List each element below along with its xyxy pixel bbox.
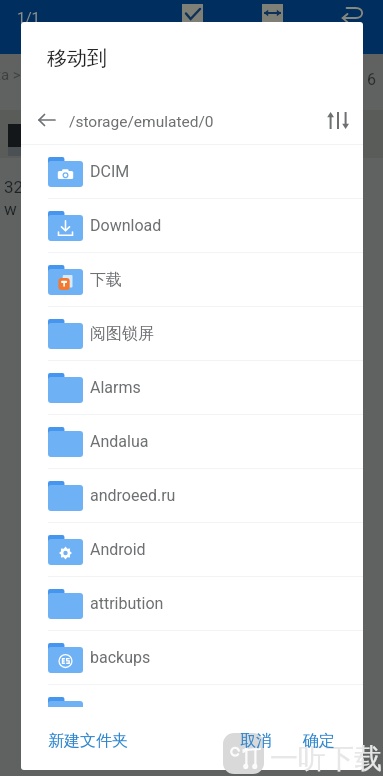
staticText: 新建文件夹 bbox=[48, 731, 128, 751]
staticText: 32 bbox=[4, 177, 24, 197]
staticText: 阅图锁屏 bbox=[90, 324, 154, 344]
button[interactable]: 取消 bbox=[234, 723, 278, 759]
button[interactable]: 下载 bbox=[21, 253, 363, 306]
staticText: attribution bbox=[90, 594, 164, 613]
button[interactable]: 新建文件夹 bbox=[42, 723, 134, 759]
staticText: 一听下载 bbox=[270, 741, 382, 776]
staticText: /storage/emulated/0 bbox=[69, 113, 318, 131]
button[interactable]: androeed.ru bbox=[21, 469, 363, 522]
button[interactable]: Resize bbox=[262, 4, 283, 30]
button[interactable]: backups bbox=[21, 631, 363, 684]
staticText: ta > bbox=[0, 66, 21, 84]
staticText: Android bbox=[90, 540, 146, 559]
button[interactable]: Andalua bbox=[21, 415, 363, 468]
staticText: 1/1 bbox=[17, 9, 41, 27]
button[interactable]: Android bbox=[21, 523, 363, 576]
button[interactable]: Back bbox=[26, 99, 67, 140]
staticText: Andalua bbox=[90, 432, 149, 451]
staticText: 确定 bbox=[303, 731, 335, 751]
staticText: 移动到 bbox=[47, 46, 107, 71]
button[interactable]: Undo bbox=[337, 2, 368, 24]
button[interactable]: 阅图锁屏 bbox=[21, 307, 363, 360]
button[interactable] bbox=[21, 685, 363, 707]
staticText: 取消 bbox=[240, 731, 272, 751]
button[interactable]: attribution bbox=[21, 577, 363, 630]
button[interactable]: DCIM bbox=[21, 145, 363, 198]
staticText: 6 bbox=[367, 70, 376, 89]
staticText: backups bbox=[90, 648, 151, 667]
staticText: 下载 bbox=[90, 270, 122, 290]
staticText: w bbox=[4, 199, 17, 219]
staticText: Download bbox=[90, 216, 162, 235]
button[interactable]: Select all bbox=[182, 4, 203, 30]
button[interactable]: 确定 bbox=[297, 723, 341, 759]
staticText: DCIM bbox=[90, 162, 130, 181]
staticText: androeed.ru bbox=[90, 486, 176, 505]
staticText: Alarms bbox=[90, 378, 141, 397]
button[interactable]: Download bbox=[21, 199, 363, 252]
button[interactable]: Sort bbox=[318, 100, 358, 140]
button[interactable]: Alarms bbox=[21, 361, 363, 414]
